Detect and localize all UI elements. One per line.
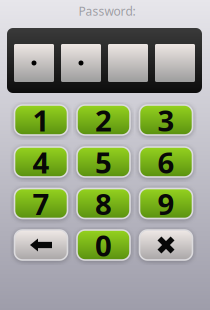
staticText: 9	[157, 184, 174, 223]
staticText: 5	[95, 142, 112, 181]
button[interactable]: 0	[77, 230, 130, 260]
button[interactable]: 5	[77, 147, 130, 177]
button[interactable]: Delete	[14, 230, 67, 260]
button[interactable]: 8	[77, 188, 130, 218]
button[interactable]: 2	[77, 105, 130, 135]
button[interactable]: Clear	[139, 230, 192, 260]
staticText: 4	[32, 142, 49, 181]
button[interactable]: 3	[139, 105, 192, 135]
staticText: 1	[32, 100, 49, 139]
staticText: 8	[95, 184, 112, 223]
staticText: 7	[32, 184, 49, 223]
button[interactable]: 7	[14, 188, 67, 218]
button[interactable]: 4	[14, 147, 67, 177]
staticText: Password:	[78, 3, 135, 19]
staticText: 0	[95, 225, 112, 264]
button[interactable]: 9	[139, 188, 192, 218]
staticText: 3	[157, 100, 174, 139]
button[interactable]: 1	[14, 105, 67, 135]
staticText: 2	[95, 100, 112, 139]
button[interactable]: 6	[139, 147, 192, 177]
staticText: 6	[157, 142, 174, 181]
